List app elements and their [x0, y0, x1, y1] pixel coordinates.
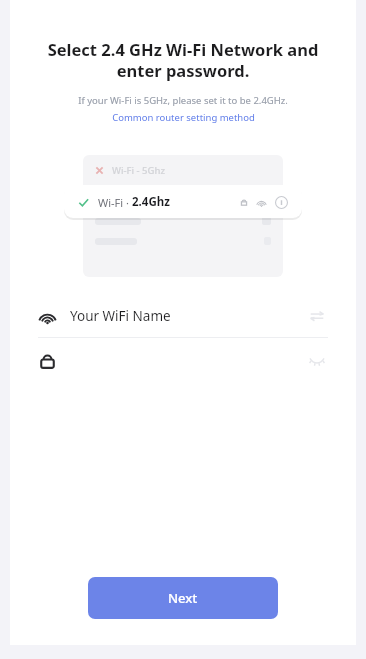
staticText: Select 2.4 GHz Wi-Fi Network and enter p…	[26, 38, 340, 82]
staticText: If your Wi-Fi is 5GHz, please set it to …	[18, 94, 348, 107]
button[interactable]: Common router setting method	[104, 110, 263, 125]
staticText: Common router setting method	[112, 111, 255, 124]
button[interactable]: Show password	[38, 338, 328, 382]
staticText: 2.4Ghz	[132, 194, 170, 210]
button[interactable]: Switch network	[306, 305, 328, 327]
staticText: Your WiFi Name	[70, 307, 171, 325]
staticText: Wi-Fi ·	[98, 195, 132, 210]
button[interactable]: Show password	[306, 349, 328, 371]
button[interactable]: Next	[88, 577, 278, 619]
button[interactable]: Wi-Fi ·	[64, 185, 302, 218]
staticText: Wi-Fi - 5Ghz	[112, 164, 165, 177]
button[interactable]: Your WiFi Name	[38, 295, 328, 337]
staticText: Next	[168, 589, 198, 607]
